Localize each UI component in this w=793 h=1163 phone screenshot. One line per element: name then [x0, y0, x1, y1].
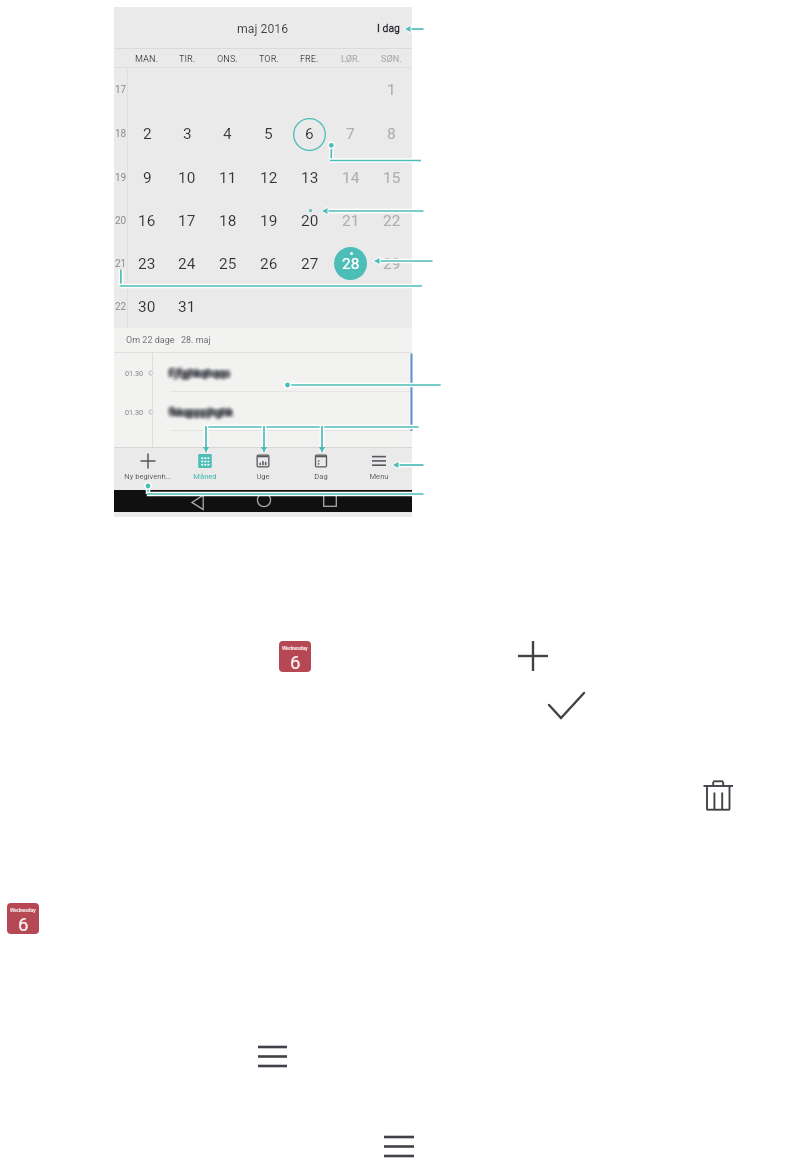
button[interactable]: 16: [127, 199, 167, 242]
staticText: fkkqpppjhghk: [166, 409, 230, 421]
staticText: 29: [383, 255, 401, 273]
button[interactable]: 20: [289, 199, 330, 242]
staticText: 6: [305, 125, 314, 143]
button[interactable]: 11: [207, 156, 248, 199]
button[interactable]: 31: [167, 285, 207, 328]
button[interactable]: I dag: [369, 22, 412, 34]
button[interactable]: 27: [289, 242, 330, 285]
staticText: 25: [219, 255, 237, 273]
staticText: Fjfgjhkqhqqs: [170, 366, 231, 378]
button[interactable]: 9: [127, 156, 167, 199]
staticText: Wednesday: [10, 907, 36, 913]
button[interactable]: Dag: [292, 447, 350, 489]
button[interactable]: [371, 285, 412, 328]
button[interactable]: 14: [330, 156, 371, 199]
button[interactable]: Menu: [350, 447, 408, 489]
staticText: fkkqpppjhghk: [169, 404, 233, 416]
button[interactable]: 4: [207, 112, 248, 156]
staticText: fkkqpppjhghk: [173, 406, 237, 418]
button[interactable]: 21: [330, 199, 371, 242]
button[interactable]: 17: [167, 199, 207, 242]
staticText: MAN.: [135, 53, 159, 64]
button[interactable]: 25: [207, 242, 248, 285]
button[interactable]: 01.30: [114, 392, 412, 431]
staticText: Fjfgjhkqhqqs: [171, 366, 232, 378]
staticText: Fjfgjhkqhqqs: [170, 370, 231, 382]
staticText: fkkqpppjhghk: [168, 409, 232, 421]
button[interactable]: 22: [371, 199, 412, 242]
staticText: fkkqpppjhghk: [171, 408, 235, 420]
button[interactable]: 7: [330, 112, 371, 156]
staticText: fkkqpppjhghk: [165, 405, 229, 417]
button[interactable]: 19: [248, 199, 289, 242]
staticText: fkkqpppjhghk: [169, 406, 233, 418]
staticText: fkkqpppjhghk: [170, 406, 234, 418]
button[interactable]: 24: [167, 242, 207, 285]
staticText: Fjfgjhkqhqqs: [169, 366, 230, 378]
staticText: fkkqpppjhghk: [167, 407, 231, 419]
button[interactable]: [330, 285, 371, 328]
staticText: fkkqpppjhghk: [169, 409, 233, 421]
button[interactable]: [207, 285, 248, 328]
button[interactable]: 15: [371, 156, 412, 199]
staticText: fkkqpppjhghk: [170, 403, 234, 415]
button[interactable]: Delete: [702, 778, 736, 812]
staticText: fkkqpppjhghk: [172, 407, 236, 419]
button[interactable]: Uge: [234, 447, 292, 489]
button[interactable]: 8: [371, 112, 412, 156]
button[interactable]: [289, 285, 330, 328]
staticText: Fjfgjhkqhqqs: [169, 365, 230, 377]
staticText: Fjfgjhkqhqqs: [171, 370, 232, 382]
staticText: fkkqpppjhghk: [165, 407, 229, 419]
button[interactable]: 12: [248, 156, 289, 199]
button[interactable]: 18: [207, 199, 248, 242]
button[interactable]: 5: [248, 112, 289, 156]
staticText: Fjfgjhkqhqqs: [172, 366, 233, 378]
button[interactable]: Calendar: [7, 903, 39, 934]
button[interactable]: Menu: [382, 1132, 416, 1160]
staticText: 14: [342, 169, 360, 187]
staticText: fkkqpppjhghk: [172, 404, 236, 416]
button[interactable]: 10: [167, 156, 207, 199]
button[interactable]: Recents: [323, 493, 337, 507]
button[interactable]: 3: [167, 112, 207, 156]
button[interactable]: 13: [289, 156, 330, 199]
button[interactable]: 1: [371, 68, 412, 112]
staticText: 26: [260, 255, 278, 273]
button[interactable]: 26: [248, 242, 289, 285]
button[interactable]: Ny begivenh…: [119, 447, 176, 489]
button[interactable]: [248, 285, 289, 328]
staticText: Uge: [256, 472, 270, 481]
staticText: 3: [183, 125, 192, 143]
staticText: fkkqpppjhghk: [171, 406, 235, 418]
staticText: Fjfgjhkqhqqs: [169, 368, 230, 380]
button[interactable]: Måned: [176, 447, 234, 489]
staticText: Fjfgjhkqhqqs: [169, 370, 230, 382]
staticText: fkkqpppjhghk: [170, 408, 234, 420]
button[interactable]: 29: [371, 242, 412, 285]
staticText: fkkqpppjhghk: [173, 407, 237, 419]
staticText: Fjfgjhkqhqqs: [172, 368, 233, 380]
staticText: fkkqpppjhghk: [167, 403, 231, 415]
button[interactable]: 01.30: [114, 353, 412, 392]
button[interactable]: Home: [257, 493, 271, 507]
button[interactable]: Menu: [256, 1042, 289, 1071]
button[interactable]: 28: [330, 242, 371, 285]
button[interactable]: 2: [127, 112, 167, 156]
button[interactable]: 23: [127, 242, 167, 285]
staticText: 7: [346, 125, 355, 143]
button[interactable]: Back: [191, 493, 205, 507]
staticText: Fjfgjhkqhqqs: [168, 368, 229, 380]
staticText: 21: [115, 258, 127, 270]
staticText: 30: [138, 298, 156, 316]
button[interactable]: Calendar: [279, 641, 311, 672]
button[interactable]: 30: [127, 285, 167, 328]
staticText: Fjfgjhkqhqqs: [165, 369, 226, 381]
button[interactable]: 6: [289, 112, 330, 156]
